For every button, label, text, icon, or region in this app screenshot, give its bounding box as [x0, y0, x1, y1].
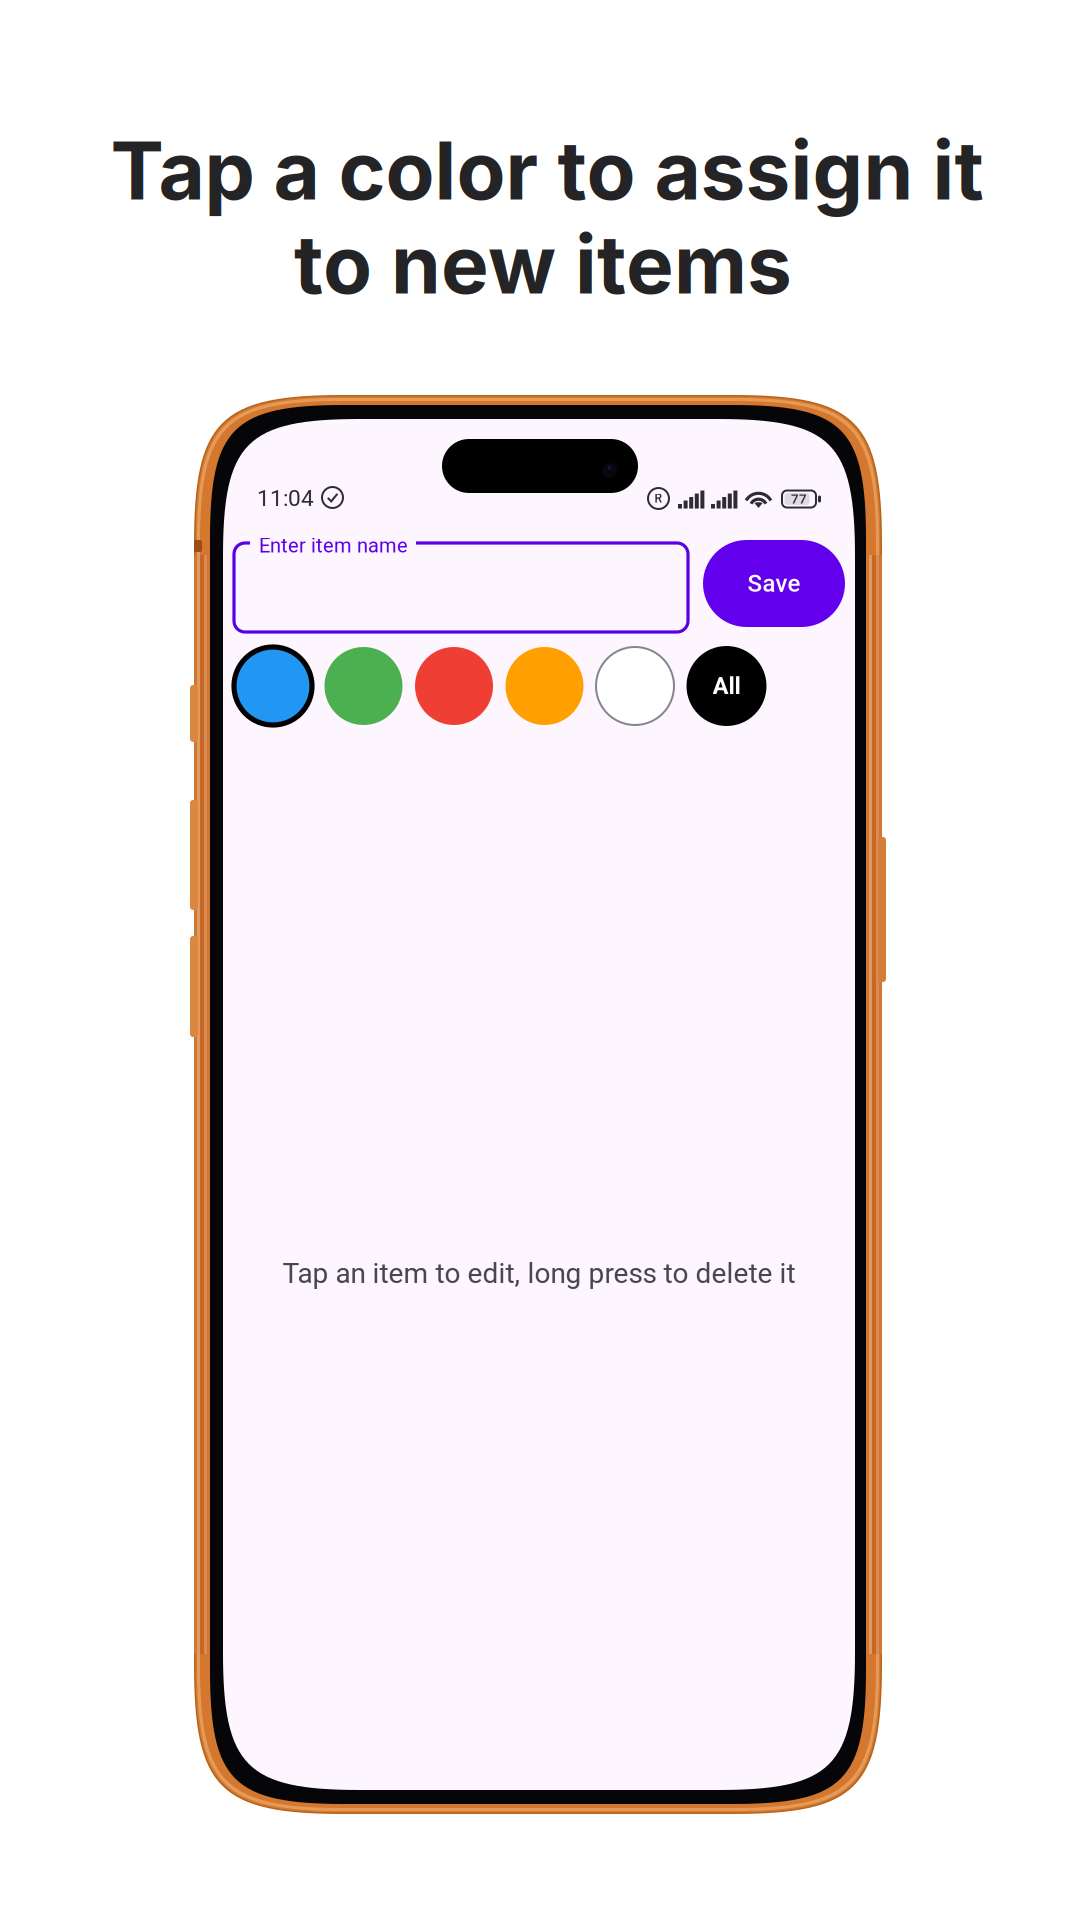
staticText: Tap an item to edit, long press to delet…	[282, 1257, 795, 1290]
button[interactable]: All	[686, 646, 766, 726]
staticText: Tap a color to assign it	[110, 122, 983, 219]
button[interactable]: White	[596, 647, 674, 725]
staticText: 77	[791, 491, 807, 507]
button[interactable]: Save	[703, 540, 845, 627]
staticText: R	[654, 491, 662, 506]
staticText: 11:04	[257, 485, 314, 512]
button[interactable]: Blue	[234, 647, 312, 725]
button[interactable]: Red	[415, 647, 493, 725]
staticText: Save	[747, 569, 800, 597]
staticText: to new items	[294, 216, 792, 313]
staticText: All	[712, 672, 740, 700]
button[interactable]: Green	[324, 647, 402, 725]
button[interactable]: Enter item name	[234, 543, 688, 632]
button[interactable]: Orange	[505, 647, 583, 725]
staticText: Enter item name	[259, 534, 408, 557]
